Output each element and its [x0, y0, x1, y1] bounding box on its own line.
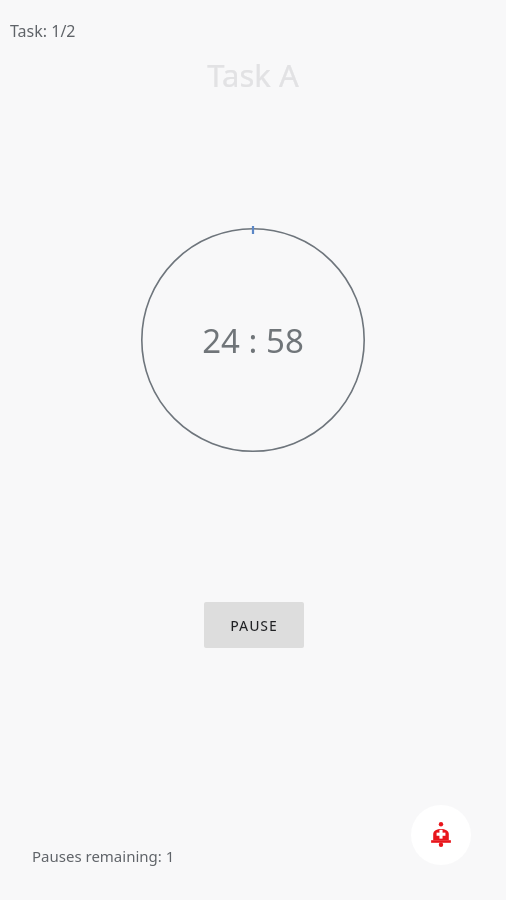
- staticText: Pauses remaining: 1: [32, 846, 175, 866]
- staticText: 24 : 58: [202, 318, 304, 363]
- staticText: Task A: [207, 54, 299, 96]
- button[interactable]: Add alarm: [411, 805, 471, 865]
- staticText: PAUSE: [230, 616, 278, 635]
- staticText: Task: 1/2: [10, 20, 76, 42]
- button[interactable]: PAUSE: [204, 602, 304, 648]
